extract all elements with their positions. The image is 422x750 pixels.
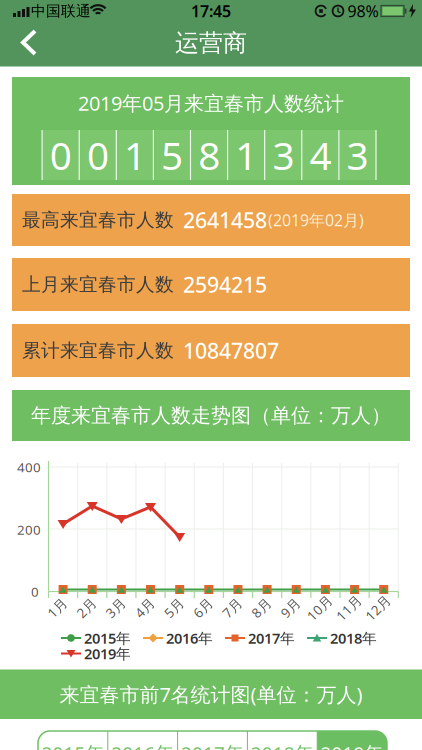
- button[interactable]: 2019年: [317, 731, 387, 750]
- staticText: 4: [309, 129, 331, 181]
- staticText: 8: [198, 129, 220, 181]
- staticText: 2月: [76, 599, 97, 617]
- staticText: 2017年: [181, 741, 244, 750]
- button[interactable]: 2018年: [247, 731, 317, 750]
- staticText: 5月: [163, 599, 184, 617]
- staticText: 中国联通: [31, 2, 91, 20]
- staticText: 17:45: [191, 0, 231, 22]
- staticText: (2019年02月): [268, 209, 364, 231]
- staticText: 2015年: [84, 628, 131, 648]
- staticText: 上月来宜春市人数: [22, 273, 174, 296]
- button[interactable]: 2016年: [143, 631, 223, 645]
- staticText: 0: [50, 129, 72, 181]
- staticText: 5: [161, 129, 183, 181]
- staticText: 200: [17, 521, 41, 538]
- staticText: 8月: [251, 599, 272, 617]
- staticText: 1: [124, 129, 146, 181]
- staticText: 12月: [363, 599, 392, 617]
- staticText: 运营商: [175, 28, 247, 58]
- staticText: 11月: [334, 599, 363, 617]
- button[interactable]: 2015年: [38, 731, 108, 750]
- staticText: 最高来宜春市人数: [22, 208, 174, 231]
- staticText: 2016年: [166, 628, 213, 648]
- staticText: 10月: [305, 599, 334, 617]
- staticText: 2019年: [321, 741, 384, 750]
- staticText: 2019年: [84, 644, 131, 663]
- staticText: 2019年05月来宜春市人数统计: [78, 90, 344, 116]
- staticText: 1: [235, 129, 257, 181]
- staticText: 0: [31, 583, 39, 600]
- staticText: 2017年: [248, 628, 295, 648]
- staticText: 3月: [105, 599, 126, 617]
- button[interactable]: 2015年: [61, 631, 141, 645]
- staticText: 累计来宜春市人数: [22, 339, 174, 362]
- staticText: 2016年: [111, 741, 174, 750]
- staticText: 2594215: [183, 270, 267, 299]
- staticText: 2641458: [183, 206, 267, 234]
- staticText: 1月: [47, 599, 68, 617]
- staticText: 2018年: [330, 628, 377, 648]
- button[interactable]: Back: [4, 20, 54, 65]
- staticText: 年度来宜春市人数走势图（单位：万人）: [31, 403, 391, 428]
- staticText: 400: [17, 458, 41, 476]
- staticText: 3: [272, 129, 294, 181]
- button[interactable]: 2019年: [61, 646, 141, 660]
- staticText: 3: [347, 129, 369, 181]
- staticText: 来宜春市前7名统计图(单位：万人): [59, 681, 362, 708]
- staticText: 2018年: [251, 741, 314, 750]
- button[interactable]: 2018年: [307, 631, 387, 645]
- button[interactable]: 2017年: [225, 631, 305, 645]
- staticText: 10847807: [183, 336, 279, 365]
- staticText: 0: [87, 129, 109, 181]
- staticText: 2015年: [41, 741, 104, 750]
- staticText: 4月: [134, 599, 155, 617]
- button[interactable]: 2017年: [178, 731, 247, 750]
- staticText: 7月: [221, 599, 242, 617]
- staticText: 9月: [280, 599, 301, 617]
- staticText: 98%: [347, 0, 378, 22]
- staticText: 6月: [192, 599, 213, 617]
- button[interactable]: 2016年: [108, 731, 178, 750]
